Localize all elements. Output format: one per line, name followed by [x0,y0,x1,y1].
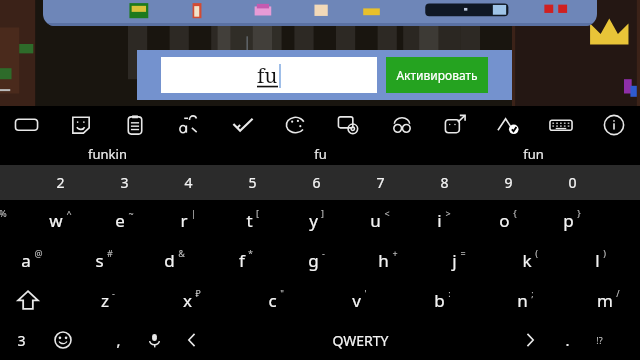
button[interactable]: n [484,280,567,320]
staticText: # [107,247,113,259]
staticText: 3 [120,173,129,192]
staticText: < [384,207,390,219]
button[interactable]: 7 [348,165,412,200]
staticText: o [499,209,510,232]
staticText: d [164,249,175,272]
staticText: ; [531,287,534,299]
button[interactable]: fu [214,143,427,165]
button[interactable]: 8 [412,165,476,200]
button[interactable]: Stickers [54,106,108,143]
button[interactable]: g [281,240,352,280]
staticText: i [437,209,442,232]
staticText: c [268,289,277,312]
staticText: 7 [376,173,385,192]
staticText: . [565,330,570,350]
button[interactable]: f [210,240,281,280]
button[interactable]: 4 [156,165,220,200]
button[interactable]: w [28,200,92,240]
button[interactable]: !? [582,320,616,360]
button[interactable]: i [412,200,476,240]
staticText: QWERTY [332,331,389,350]
staticText: u [370,209,381,232]
button[interactable]: e [92,200,156,240]
staticText: h [378,249,389,272]
button[interactable]: Theme [269,106,322,143]
button[interactable]: 0 [540,165,604,200]
button[interactable]: fu [161,57,377,93]
button[interactable]: Symbols [0,320,26,360]
button[interactable]: QWERTY [212,320,508,360]
staticText: / [616,287,620,299]
button[interactable]: 6 [284,165,348,200]
button[interactable]: 9 [476,165,540,200]
staticText: * [248,247,253,259]
button[interactable]: j [423,240,494,280]
button[interactable]: funkin [0,143,214,165]
button[interactable]: t [220,200,284,240]
button[interactable]: l [565,240,636,280]
button[interactable]: b [401,280,484,320]
staticText: = [460,247,466,259]
staticText: p [563,209,574,232]
button[interactable]: d [139,240,210,280]
staticText: r [180,209,188,232]
staticText: 5 [248,173,257,192]
staticText: 9 [504,173,513,192]
button[interactable]: k [494,240,565,280]
button[interactable]: Handwriting [481,106,534,143]
staticText: - [322,247,325,259]
button[interactable]: s [68,240,139,280]
button[interactable]: m [567,280,640,320]
button[interactable]: Info [587,106,640,143]
button[interactable]: Translate [162,106,216,143]
button[interactable]: Incognito [375,106,428,143]
button[interactable]: x [150,280,234,320]
button[interactable]: Resize [428,106,481,143]
button[interactable]: , [100,320,136,360]
button[interactable]: 5 [220,165,284,200]
button[interactable]: Emoji [26,320,100,360]
button[interactable]: Shift [0,280,56,320]
staticText: g [308,249,319,272]
staticText: !? [596,334,603,346]
button[interactable]: Spell check [216,106,269,143]
button[interactable]: p [540,200,604,240]
staticText: ₽ [195,287,201,299]
button[interactable]: h [352,240,423,280]
button[interactable]: z [66,280,150,320]
staticText: ' [364,287,367,299]
staticText: 6 [312,173,321,192]
button[interactable]: . [552,320,582,360]
staticText: ) [603,247,606,259]
button[interactable]: fun [427,143,640,165]
staticText: + [392,247,398,259]
button[interactable]: Settings [322,106,375,143]
button[interactable]: c [234,280,318,320]
staticText: n [517,289,528,312]
button[interactable]: r [156,200,220,240]
button[interactable]: Next [508,320,552,360]
staticText: j [452,249,457,272]
button[interactable]: Voice input [136,320,172,360]
staticText: 0 [568,173,577,192]
staticText: : [448,287,451,299]
staticText: 8 [440,173,449,192]
staticText: fu [314,145,327,163]
button[interactable]: a [0,240,68,280]
button[interactable]: GIF [0,106,54,143]
button[interactable]: o [476,200,540,240]
button[interactable]: q [0,200,28,240]
button[interactable]: Previous [172,320,212,360]
staticText: } [577,207,581,219]
button[interactable]: Clipboard [108,106,162,143]
staticText: % [0,207,7,219]
button[interactable]: u [348,200,412,240]
button[interactable]: Keyboard layout [534,106,587,143]
button[interactable]: 3 [92,165,156,200]
button[interactable]: 2 [28,165,92,200]
button[interactable]: Активировать [386,57,488,93]
button[interactable]: y [284,200,348,240]
button[interactable]: v [318,280,401,320]
